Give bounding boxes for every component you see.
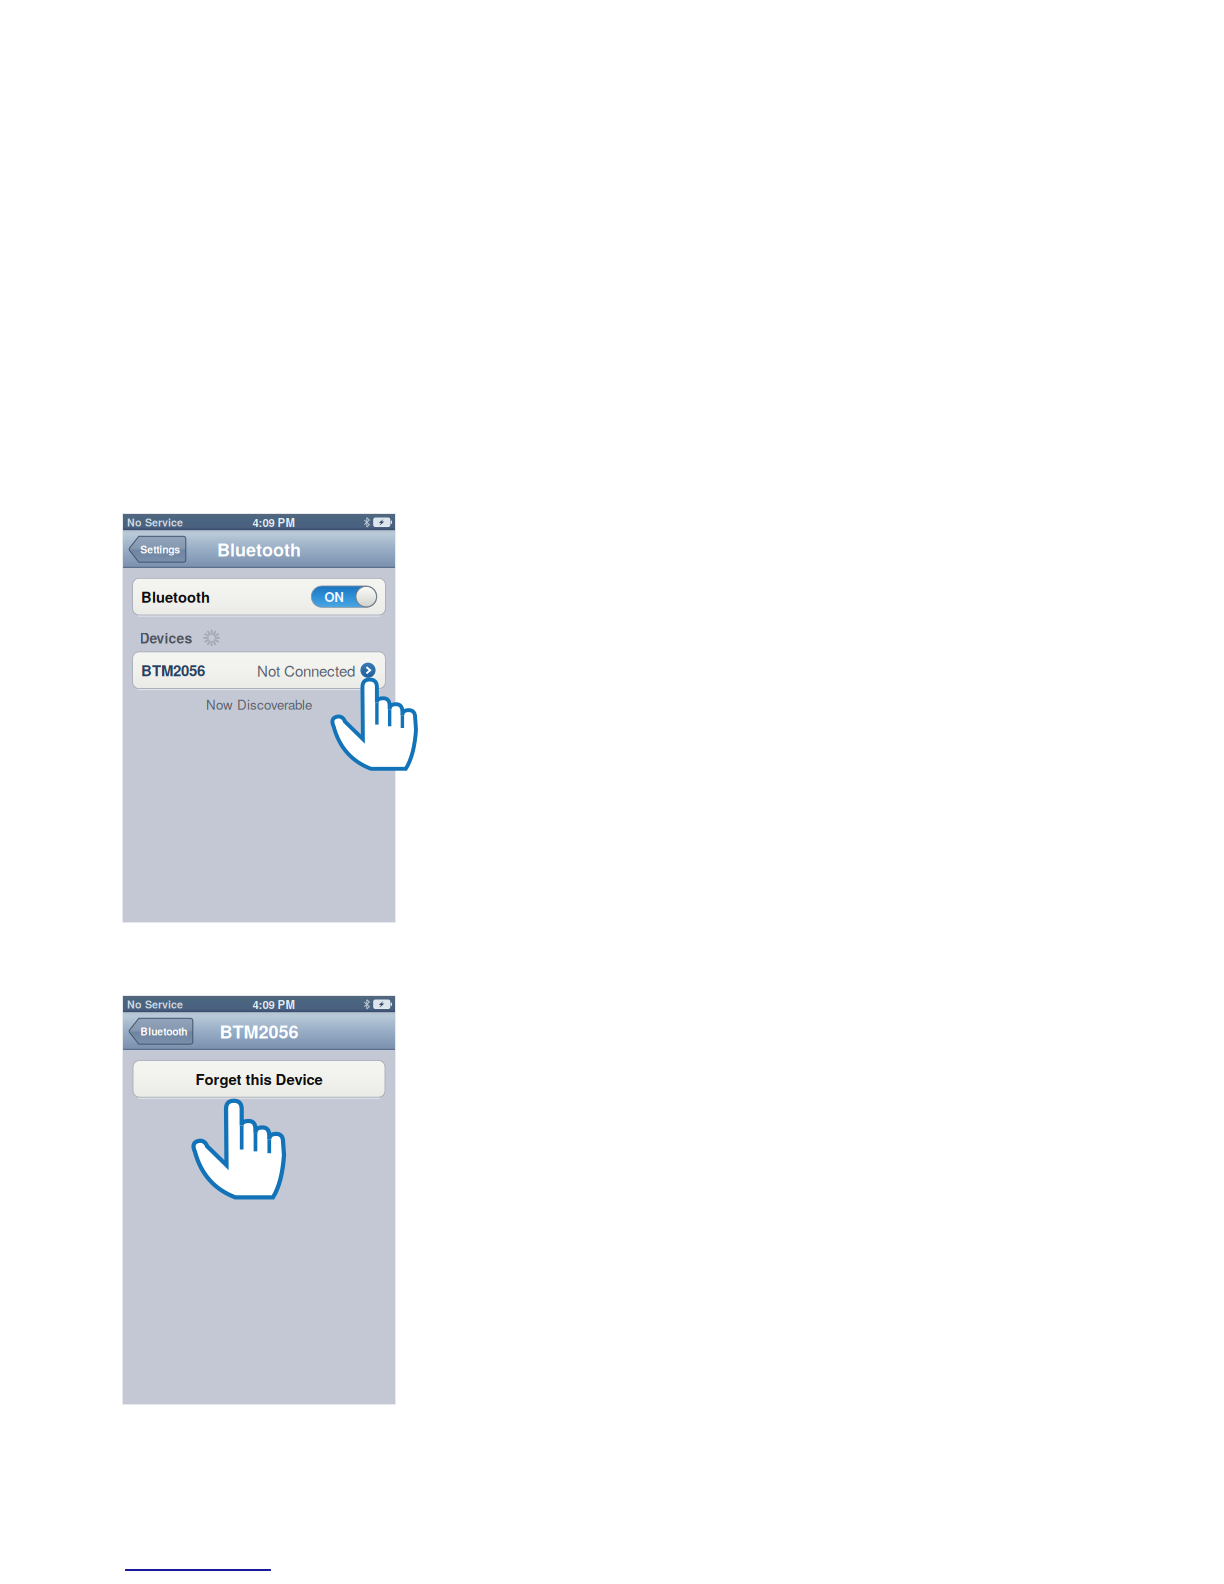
staticText: Now Discoverable <box>206 695 312 714</box>
button[interactable]: Bluetooth <box>128 1018 193 1045</box>
staticText: Settings <box>140 542 180 557</box>
staticText: Bluetooth <box>217 536 301 562</box>
staticText: 4:09 PM <box>252 996 294 1012</box>
staticText: 4:09 PM <box>252 514 294 530</box>
staticText: ON <box>324 587 344 606</box>
staticText: Forget this Device <box>195 1068 322 1089</box>
staticText: BTM2056 <box>141 659 205 681</box>
staticText: Bluetooth <box>140 1024 187 1039</box>
staticText: Not Connected <box>257 659 355 681</box>
staticText: No Service <box>127 515 183 530</box>
button[interactable]: BTM2056 <box>133 652 385 689</box>
staticText: BTM2056 <box>219 1018 298 1044</box>
staticText: No Service <box>127 997 183 1012</box>
staticText: Bluetooth <box>141 586 210 607</box>
button[interactable]: Bluetooth <box>133 578 385 615</box>
button[interactable]: Settings <box>128 536 186 563</box>
staticText: Devices <box>140 628 193 648</box>
button[interactable]: Forget this Device <box>133 1060 385 1097</box>
